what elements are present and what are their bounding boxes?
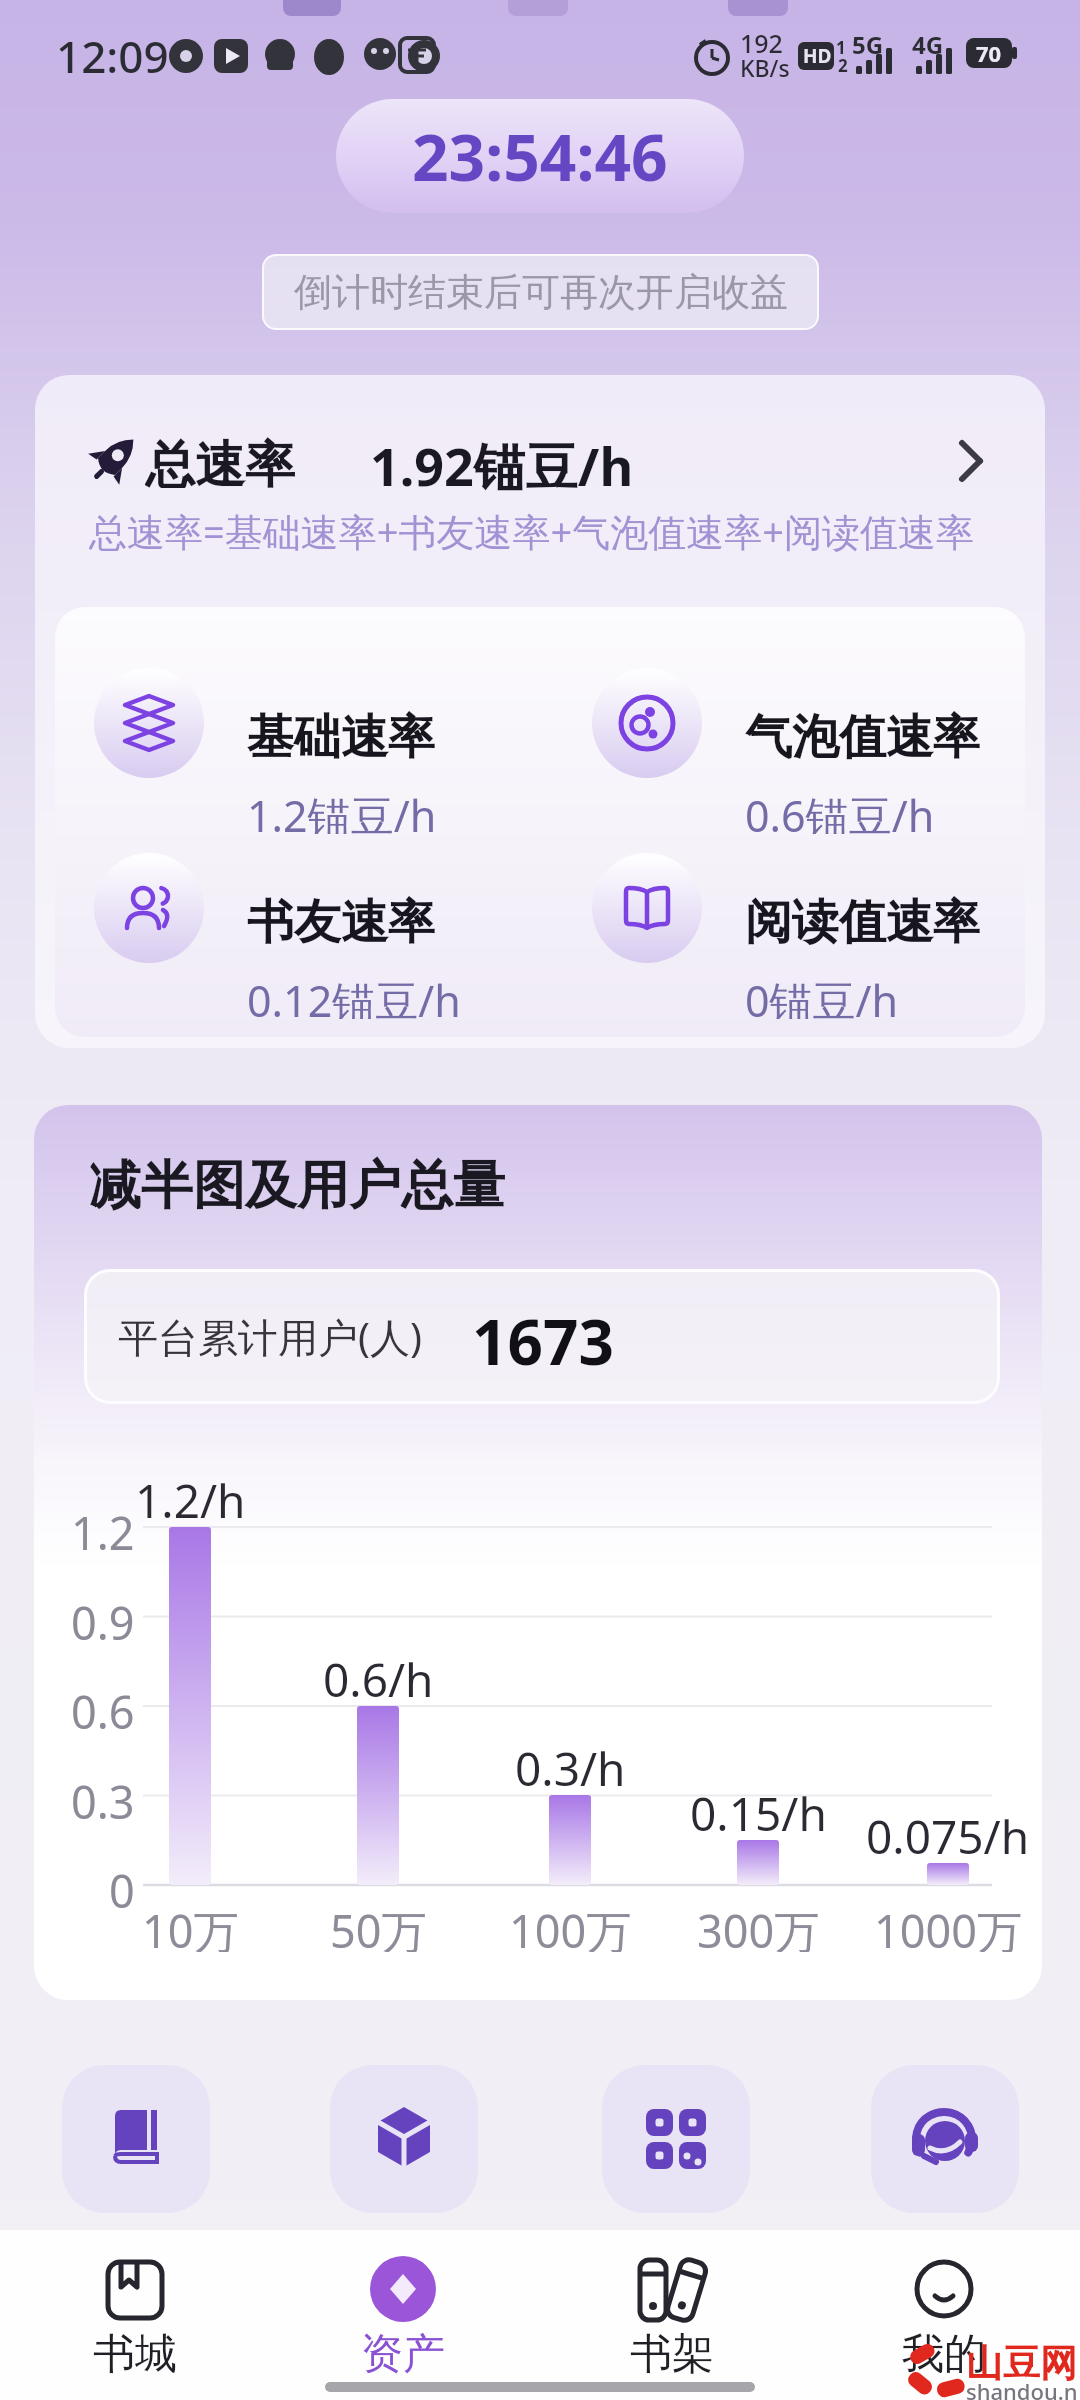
staticText: 1 (836, 36, 846, 54)
staticText: 0锚豆/h (745, 971, 899, 1019)
staticText: 1673 (472, 1299, 614, 1375)
staticText: 70 (976, 38, 1002, 68)
staticText: 1000万 (874, 1900, 1022, 1952)
staticText: 倒计时结束后可再次开启收益 (294, 268, 788, 316)
staticText: HD (803, 43, 832, 69)
staticText: 192 (740, 26, 783, 54)
button[interactable] (330, 2065, 478, 2213)
staticText: 1.2锚豆/h (247, 786, 437, 834)
button[interactable] (75, 425, 1005, 495)
staticText: 12:09 (56, 26, 169, 78)
staticText: 0.6/h (323, 1648, 434, 1700)
staticText: 阅读值速率 (745, 893, 980, 945)
staticText: 1.2 (71, 1502, 135, 1552)
staticText: 书架 (630, 2328, 714, 2374)
button[interactable] (75, 2245, 195, 2380)
button[interactable] (881, 2245, 1001, 2380)
button[interactable] (871, 2065, 1019, 2213)
staticText: 资产 (361, 2328, 445, 2374)
staticText: 0.075/h (866, 1805, 1030, 1857)
staticText: 书友速率 (247, 893, 435, 945)
staticText: 基础速率 (247, 708, 435, 760)
staticText: 1.92锚豆/h (370, 430, 634, 492)
staticText: 0.15/h (690, 1782, 827, 1834)
staticText: 平台累计用户(人) (118, 1309, 422, 1363)
staticText: 山豆网 (966, 2340, 1077, 2382)
button[interactable] (62, 2065, 210, 2213)
staticText: 1.2/h (135, 1469, 246, 1521)
staticText: shandou.net (966, 2376, 1080, 2400)
staticText: 23:54:46 (412, 113, 668, 200)
staticText: 300万 (697, 1900, 820, 1952)
staticText: 气泡值速率 (745, 708, 980, 760)
staticText: 减半图及用户总量 (89, 1153, 505, 1213)
staticText: 4G (912, 28, 944, 54)
staticText: 总速率=基础速率+书友速率+气泡值速率+阅读值速率 (89, 505, 974, 553)
staticText: 书城 (93, 2328, 177, 2374)
staticText: 0.12锚豆/h (247, 971, 461, 1019)
staticText: 50万 (330, 1900, 427, 1952)
staticText: 0.6 (71, 1681, 135, 1731)
button[interactable]: 23:54:46 (336, 99, 744, 213)
staticText: 我的 (902, 2328, 986, 2374)
button[interactable] (602, 2065, 750, 2213)
staticText: 0.3 (71, 1771, 135, 1821)
staticText: 0 (109, 1860, 135, 1910)
staticText: 总速率 (145, 434, 295, 488)
staticText: 5G (852, 28, 884, 54)
staticText: 10万 (142, 1900, 239, 1952)
staticText: 0.9 (71, 1592, 135, 1642)
staticText: 100万 (509, 1900, 632, 1952)
staticText: 2 (838, 54, 848, 72)
button[interactable] (612, 2245, 732, 2380)
staticText: 0.3/h (515, 1737, 626, 1789)
staticText: 0.6锚豆/h (745, 786, 935, 834)
button[interactable] (345, 2245, 465, 2380)
staticText: KB/s (740, 52, 790, 78)
